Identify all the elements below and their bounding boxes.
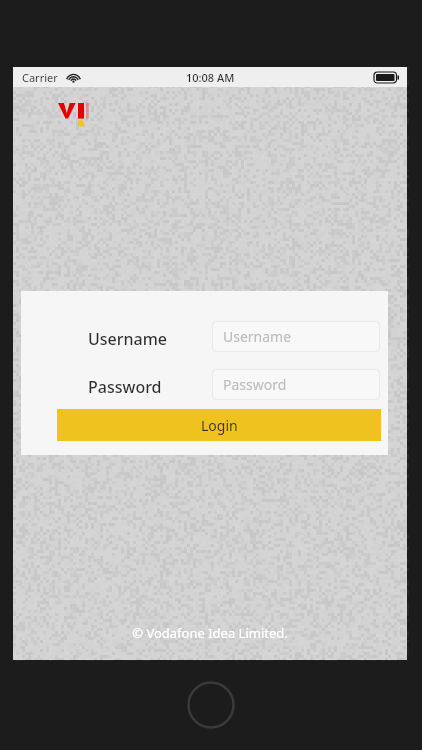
button[interactable]: Vi logo (58, 100, 98, 130)
staticText: Username (223, 327, 292, 346)
staticText: Carrier (22, 70, 58, 85)
staticText: Password (88, 376, 162, 398)
button[interactable]: Home (187, 681, 235, 729)
staticText: Username (88, 328, 168, 350)
button[interactable]: Login (57, 409, 381, 441)
button[interactable]: Password (212, 369, 380, 400)
staticText: 10:08 AM (186, 70, 235, 85)
staticText: Login (201, 416, 238, 435)
staticText: © Vodafone Idea Limited. (13, 624, 407, 642)
button[interactable]: Username (212, 321, 380, 352)
staticText: Password (223, 375, 287, 394)
